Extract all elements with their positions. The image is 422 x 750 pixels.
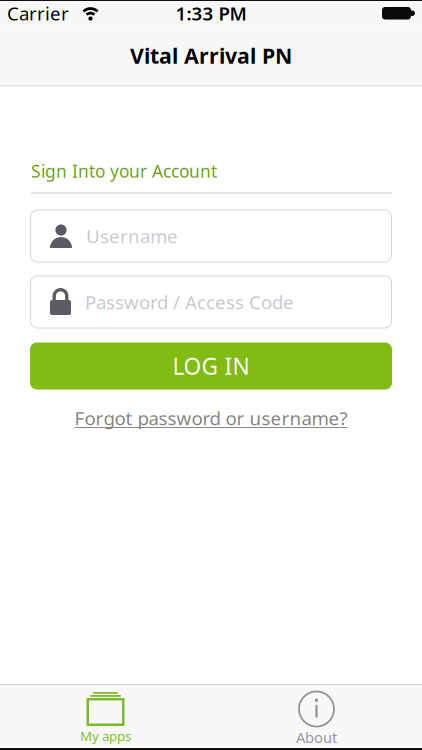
button[interactable]: Forgot password or username? bbox=[0, 405, 422, 430]
staticText: LOG IN bbox=[172, 351, 249, 381]
staticText: My apps bbox=[80, 727, 131, 745]
staticText: 1:33 PM bbox=[175, 1, 246, 26]
staticText: Username bbox=[86, 224, 178, 248]
button[interactable]: My apps bbox=[0, 685, 211, 748]
staticText: Forgot password or username? bbox=[74, 405, 347, 430]
staticText: Vital Arrival PN bbox=[130, 41, 292, 70]
staticText: Password / Access Code bbox=[85, 290, 294, 314]
staticText: Sign Into your Account bbox=[31, 159, 217, 182]
button[interactable]: LOG IN bbox=[30, 342, 392, 389]
button[interactable]: About bbox=[211, 685, 422, 748]
staticText: Carrier bbox=[7, 1, 69, 26]
staticText: About bbox=[296, 727, 337, 747]
button[interactable]: Password / Access Code bbox=[30, 275, 392, 328]
button[interactable]: Username bbox=[30, 209, 392, 262]
